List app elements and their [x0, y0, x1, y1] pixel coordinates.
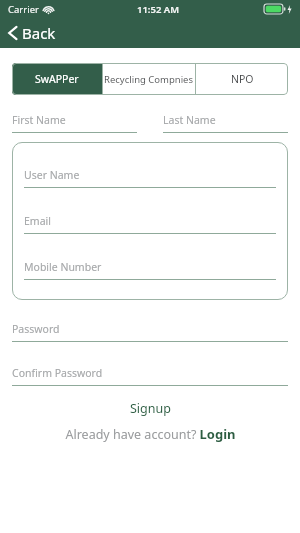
staticText: User Name: [24, 168, 80, 182]
button[interactable]: User Name: [24, 168, 276, 188]
staticText: Back: [22, 23, 56, 43]
staticText: Recycling Compnies: [104, 73, 194, 86]
button[interactable]: First Name: [12, 113, 137, 133]
button[interactable]: Last Name: [163, 113, 288, 133]
staticText: Mobile Number: [24, 260, 102, 274]
button[interactable]: Mobile Number: [24, 260, 276, 280]
staticText: Last Name: [163, 113, 216, 127]
button[interactable]: NPO: [196, 63, 288, 95]
other: Back: [8, 25, 18, 41]
staticText: SwAPPer: [35, 72, 79, 86]
button[interactable]: Signup: [0, 398, 300, 419]
staticText: NPO: [231, 72, 254, 86]
staticText: First Name: [12, 113, 66, 127]
button[interactable]: Password: [12, 322, 288, 342]
staticText: Signup: [130, 400, 171, 417]
button[interactable]: Email: [24, 214, 276, 234]
button[interactable]: Recycling Compnies: [103, 63, 195, 95]
button[interactable]: Back: [0, 18, 300, 48]
button[interactable]: Already have account? Login: [0, 423, 300, 445]
staticText: Email: [24, 214, 51, 228]
staticText: Already have account? Login: [65, 425, 236, 443]
button[interactable]: Confirm Password: [12, 366, 288, 386]
staticText: Confirm Password: [12, 366, 103, 380]
staticText: Carrier: [8, 3, 39, 16]
staticText: Password: [12, 322, 60, 336]
staticText: 11:52 AM: [137, 3, 180, 16]
button[interactable]: SwAPPer: [12, 63, 102, 95]
